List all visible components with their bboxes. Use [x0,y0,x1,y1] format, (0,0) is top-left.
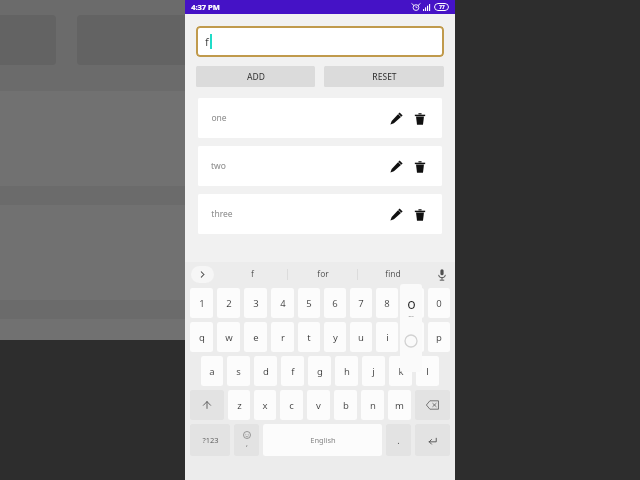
button[interactable]: Delete one [283,119,323,159]
button[interactable]: Symbols [190,424,230,456]
button[interactable]: w [217,322,240,352]
button[interactable]: s [227,356,250,386]
button[interactable]: i [376,322,398,352]
button[interactable]: r [271,322,294,352]
button[interactable]: 5 [298,288,320,318]
button[interactable]: 2 [217,288,240,318]
button[interactable]: 3 [244,288,267,318]
button[interactable]: p [428,322,450,352]
staticText: RESET [372,71,397,83]
staticText: ... [408,310,414,320]
button[interactable]: c [280,390,303,420]
button[interactable]: l [416,356,439,386]
staticText: 8 [384,297,390,310]
button[interactable]: z [228,390,250,420]
staticText: 9 [410,297,416,310]
button[interactable]: m [388,390,411,420]
button[interactable]: Delete three [283,319,323,340]
button[interactable]: 1 [190,288,213,318]
button[interactable]: 4 [271,288,294,318]
button[interactable]: two [0,205,356,300]
staticText: one [211,112,227,124]
button[interactable]: u [350,322,372,352]
button[interactable]: two [198,146,442,186]
button[interactable]: b [334,390,357,420]
button[interactable]: q [190,322,213,352]
staticText: c [289,399,294,412]
staticText: z [237,399,242,412]
staticText: . [397,434,400,446]
button[interactable]: one [198,98,442,138]
button[interactable]: ADD [196,66,315,87]
button[interactable]: Edit two [388,158,405,175]
button[interactable]: x [254,390,276,420]
button[interactable]: Delete two [411,158,428,175]
button[interactable]: j [362,356,385,386]
staticText: 5 [306,297,312,310]
button[interactable]: Emoji [234,424,259,456]
staticText: , [246,439,248,449]
button[interactable]: find [358,262,427,286]
staticText: t [307,331,311,344]
staticText: 4:37 PM [191,2,220,12]
staticText: w [225,331,233,344]
button[interactable]: Period [386,424,411,456]
button[interactable]: e [244,322,267,352]
staticText: a [209,365,215,378]
button[interactable]: RESET [77,15,361,65]
button[interactable]: English [263,424,382,456]
button[interactable]: More suggestions [191,266,214,283]
button[interactable]: 6 [324,288,346,318]
button[interactable]: Shift [190,390,224,420]
button[interactable]: n [361,390,384,420]
staticText: f [205,34,209,49]
button[interactable]: Backspace [415,390,450,420]
button[interactable]: Edit three [229,319,269,340]
button[interactable]: Voice input [434,267,449,282]
staticText: p [436,331,442,344]
button[interactable]: Edit three [388,206,405,223]
button[interactable]: Edit one [229,119,269,159]
staticText: y [333,331,338,344]
button[interactable]: t [298,322,320,352]
button[interactable]: Delete one [411,110,428,127]
button[interactable]: Edit two [229,233,269,273]
staticText: v [316,399,321,412]
button[interactable]: three [198,194,442,234]
staticText: 1 [199,297,205,310]
staticText: 6 [332,297,338,310]
staticText: o [410,331,416,344]
button[interactable]: for [288,262,357,286]
staticText: 0 [436,297,442,310]
button[interactable]: RESET [324,66,444,87]
staticText: RESET [190,27,248,54]
button[interactable]: d [254,356,277,386]
button[interactable]: g [308,356,331,386]
button[interactable]: a [201,356,223,386]
button[interactable]: Edit one [388,110,405,127]
button[interactable]: h [335,356,358,386]
button[interactable]: 8 [376,288,398,318]
button[interactable]: Enter [415,424,450,456]
button[interactable]: k [389,356,412,386]
button[interactable]: one [0,91,356,186]
button[interactable]: 7 [350,288,372,318]
button[interactable]: v [307,390,330,420]
button[interactable]: 0 [428,288,450,318]
staticText: l [426,365,429,378]
staticText: ADD [247,71,265,83]
button[interactable]: y [324,322,346,352]
staticText: 3 [253,297,259,310]
button[interactable]: f [281,356,304,386]
button[interactable]: f [218,262,287,286]
button[interactable]: f [196,26,444,57]
button[interactable]: three [0,319,356,340]
button[interactable]: Delete two [283,233,323,273]
staticText: k [398,365,404,378]
button[interactable]: o [402,322,424,352]
staticText: n [370,399,376,412]
staticText: b [343,399,349,412]
button[interactable]: 9 [402,288,424,318]
button[interactable]: Delete three [411,206,428,223]
